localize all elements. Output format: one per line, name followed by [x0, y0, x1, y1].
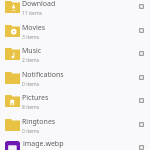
button[interactable]: Ringtones — [0, 118, 150, 142]
button[interactable]: image.webp — [0, 141, 150, 150]
staticText: Music — [22, 46, 42, 56]
staticText: 0 items — [22, 128, 40, 135]
staticText: 2 items — [22, 57, 40, 64]
button[interactable]: Select Notifications — [134, 71, 148, 83]
staticText: 0 items — [22, 81, 40, 88]
staticText: 11 items — [22, 10, 43, 17]
staticText: Pictures — [22, 93, 49, 103]
button[interactable]: Select image.webp — [134, 141, 148, 150]
button[interactable]: Pictures — [0, 94, 150, 118]
button[interactable]: Select Pictures — [134, 94, 148, 106]
button[interactable]: Select Movies — [134, 24, 148, 36]
staticText: Movies — [22, 23, 46, 33]
button[interactable]: Select Ringtones — [134, 118, 148, 130]
button[interactable]: Select Music — [134, 47, 148, 59]
staticText: Download — [22, 0, 56, 9]
staticText: Notifications — [22, 70, 64, 80]
staticText: 8 items — [22, 104, 40, 111]
button[interactable]: Select Download — [134, 0, 148, 12]
staticText: Ringtones — [22, 117, 56, 127]
staticText: image.webp — [23, 139, 64, 149]
button[interactable]: Download — [0, 0, 150, 24]
button[interactable]: Movies — [0, 24, 150, 48]
button[interactable]: Music — [0, 47, 150, 71]
staticText: 3 items — [22, 34, 40, 41]
button[interactable]: Notifications — [0, 71, 150, 95]
